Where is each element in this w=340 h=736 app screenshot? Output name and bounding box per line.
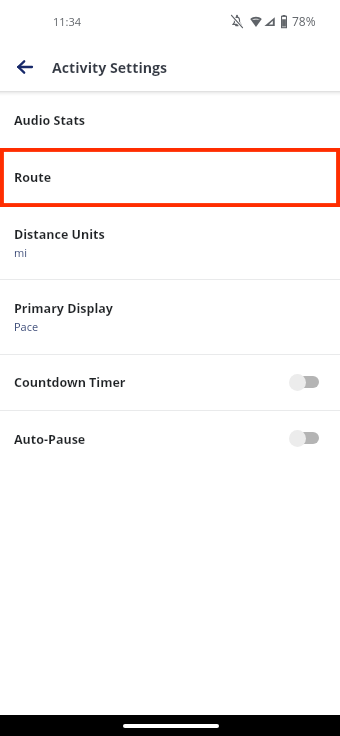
button[interactable]: Countdown Timer toggle, off xyxy=(288,373,318,393)
button[interactable]: Route xyxy=(0,147,340,207)
button[interactable]: Back xyxy=(8,51,40,83)
staticText: Route xyxy=(14,169,52,186)
staticText: 11:34 xyxy=(53,14,82,29)
staticText: Pace xyxy=(14,319,39,334)
staticText: Countdown Timer xyxy=(14,374,288,391)
button[interactable]: Auto-Pause toggle, off xyxy=(288,429,318,449)
button[interactable]: Audio Stats xyxy=(0,93,340,147)
button[interactable]: Countdown Timer xyxy=(0,355,340,410)
staticText: 78% xyxy=(292,13,316,29)
button[interactable]: Distance Units xyxy=(0,207,340,279)
staticText: Distance Units xyxy=(14,226,105,243)
staticText: Audio Stats xyxy=(14,112,86,129)
button[interactable]: Primary Display xyxy=(0,280,340,354)
staticText: Primary Display xyxy=(14,300,113,317)
staticText: Auto-Pause xyxy=(14,431,288,448)
button[interactable]: Auto-Pause xyxy=(0,411,340,467)
staticText: Activity Settings xyxy=(52,58,168,77)
staticText: mi xyxy=(14,245,28,260)
